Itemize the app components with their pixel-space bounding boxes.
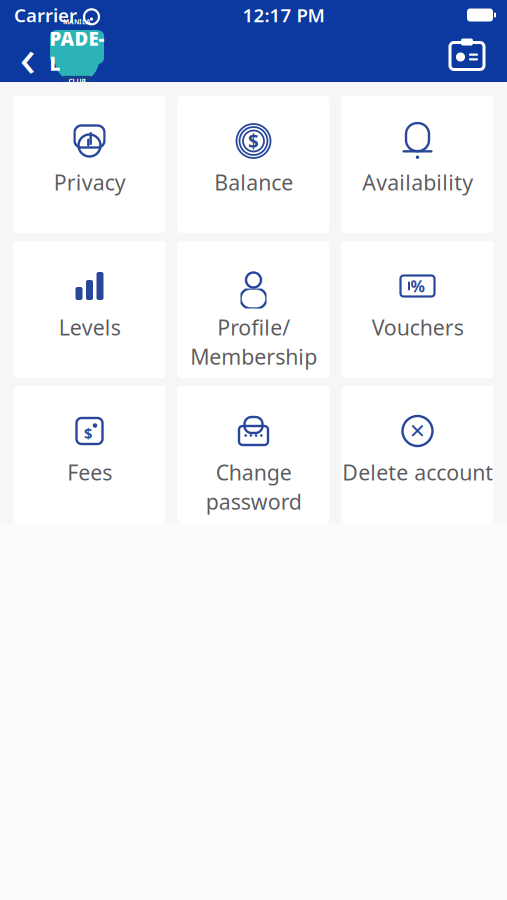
staticText: Carrier bbox=[14, 3, 77, 27]
button[interactable]: $ bbox=[13, 386, 165, 523]
button[interactable]: ✕ bbox=[341, 386, 493, 523]
staticText: MANILA bbox=[63, 17, 91, 26]
button[interactable]: Membership card bbox=[445, 34, 489, 78]
button[interactable]: Privacy bbox=[13, 96, 165, 233]
staticText: Delete account bbox=[342, 458, 493, 486]
staticText: Fees bbox=[67, 458, 112, 486]
staticText: Availability bbox=[362, 168, 473, 196]
button[interactable]: Levels bbox=[13, 241, 165, 378]
staticText: Levels bbox=[58, 313, 120, 341]
button[interactable]: $ bbox=[177, 96, 329, 233]
staticText: Privacy bbox=[53, 168, 125, 196]
button[interactable]: Change password bbox=[177, 386, 329, 523]
staticText: ✕ bbox=[409, 420, 426, 442]
staticText: ‹ bbox=[19, 21, 36, 91]
staticText: % bbox=[410, 275, 424, 297]
staticText: $ bbox=[84, 423, 92, 443]
staticText: CLUB bbox=[68, 77, 85, 86]
staticText: Vouchers bbox=[371, 313, 463, 341]
staticText: Profile/ Membership bbox=[190, 313, 317, 371]
staticText: $ bbox=[248, 129, 259, 153]
button[interactable]: % bbox=[341, 241, 493, 378]
button[interactable]: Back bbox=[8, 31, 48, 81]
staticText: PADEL bbox=[49, 26, 104, 76]
button[interactable]: Availability bbox=[341, 96, 493, 233]
button[interactable]: Profile/ Membership bbox=[177, 241, 329, 378]
staticText: Change password bbox=[205, 458, 301, 516]
staticText: 12:17 PM bbox=[242, 3, 324, 27]
staticText: Balance bbox=[214, 168, 293, 196]
